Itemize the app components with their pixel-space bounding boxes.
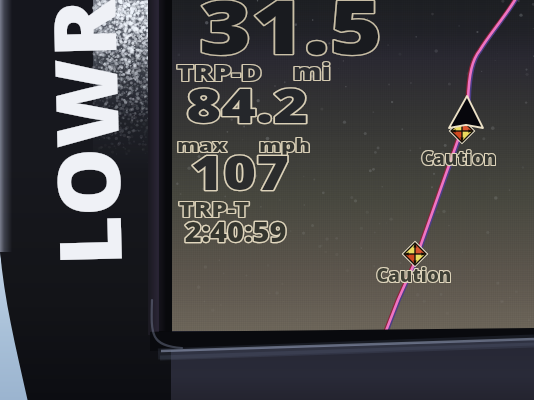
button[interactable]: Lowrance chartplotter trip screen	[0, 0, 534, 400]
